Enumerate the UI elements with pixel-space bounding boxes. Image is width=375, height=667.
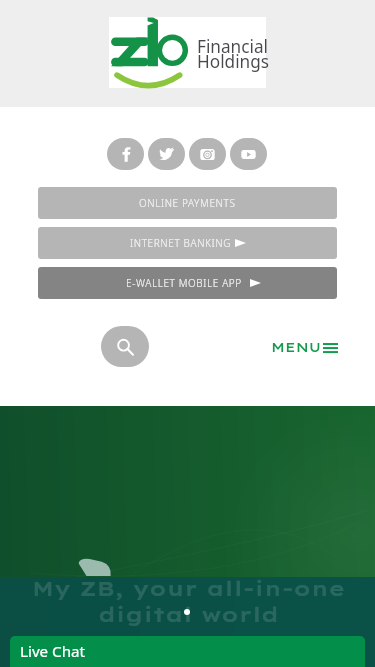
button[interactable]: ONLINE PAYMENTS <box>38 187 337 219</box>
button[interactable]: Search <box>101 326 149 367</box>
button[interactable]: Facebook <box>107 138 144 170</box>
staticText: ONLINE PAYMENTS <box>139 196 236 210</box>
button[interactable]: Instagram <box>189 138 226 170</box>
button[interactable]: YouTube <box>230 138 267 170</box>
staticText: INTERNET BANKING <box>130 236 232 250</box>
staticText: E-WALLET MOBILE APP <box>126 276 242 290</box>
staticText: Financial Holdings <box>197 35 269 73</box>
button[interactable]: MENU <box>271 339 338 356</box>
button[interactable]: Live Chat <box>10 636 365 667</box>
button[interactable]: INTERNET BANKING <box>38 227 337 259</box>
staticText: MENU <box>271 339 322 356</box>
staticText: My ZB, your all-in-one digital world <box>12 575 365 627</box>
button[interactable]: E-WALLET MOBILE APP <box>38 267 337 299</box>
button[interactable]: Twitter <box>148 138 185 170</box>
staticText: Live Chat <box>20 641 86 662</box>
